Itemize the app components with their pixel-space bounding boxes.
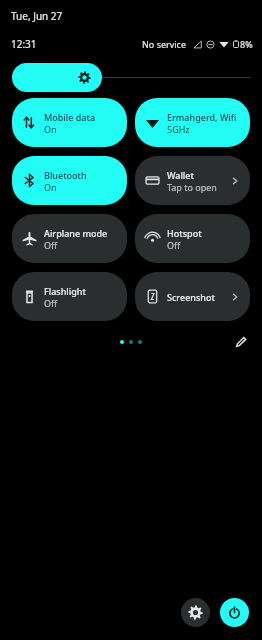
staticText: 8% (240, 38, 253, 50)
staticText: Tap to open (167, 181, 217, 193)
staticText: Wallet (167, 169, 194, 181)
staticText: Off (44, 297, 58, 309)
button[interactable]: Hotspot (135, 214, 250, 263)
button[interactable]: Screenshot (135, 272, 250, 321)
staticText: Mobile data (44, 111, 96, 123)
staticText: Hotspot (167, 227, 202, 239)
staticText: 12:31 (11, 37, 37, 51)
staticText: No service (142, 38, 187, 50)
staticText: Screenshot (167, 291, 215, 303)
staticText: On (44, 123, 57, 135)
staticText: Ermahgerd, Wifi (167, 111, 237, 123)
button[interactable]: Power (220, 598, 249, 627)
staticText: Airplane mode (44, 227, 108, 239)
staticText: Off (44, 239, 58, 251)
button[interactable]: Bluetooth (12, 156, 127, 205)
button[interactable]: Flashlight (12, 272, 127, 321)
button[interactable]: Ermahgerd, Wifi (135, 98, 250, 147)
button[interactable]: Mobile data (12, 98, 127, 147)
staticText: Bluetooth (44, 169, 87, 181)
staticText: Flashlight (44, 285, 86, 297)
button[interactable]: Edit tiles (231, 333, 249, 351)
button[interactable]: Settings (181, 598, 210, 627)
button[interactable]: Wallet (135, 156, 250, 205)
button[interactable]: Airplane mode (12, 214, 127, 263)
staticText: Tue, Jun 27 (11, 9, 63, 23)
staticText: On (44, 181, 57, 193)
staticText: 5GHz (167, 123, 190, 135)
button[interactable]: Brightness (12, 62, 250, 92)
staticText: Off (167, 239, 181, 251)
